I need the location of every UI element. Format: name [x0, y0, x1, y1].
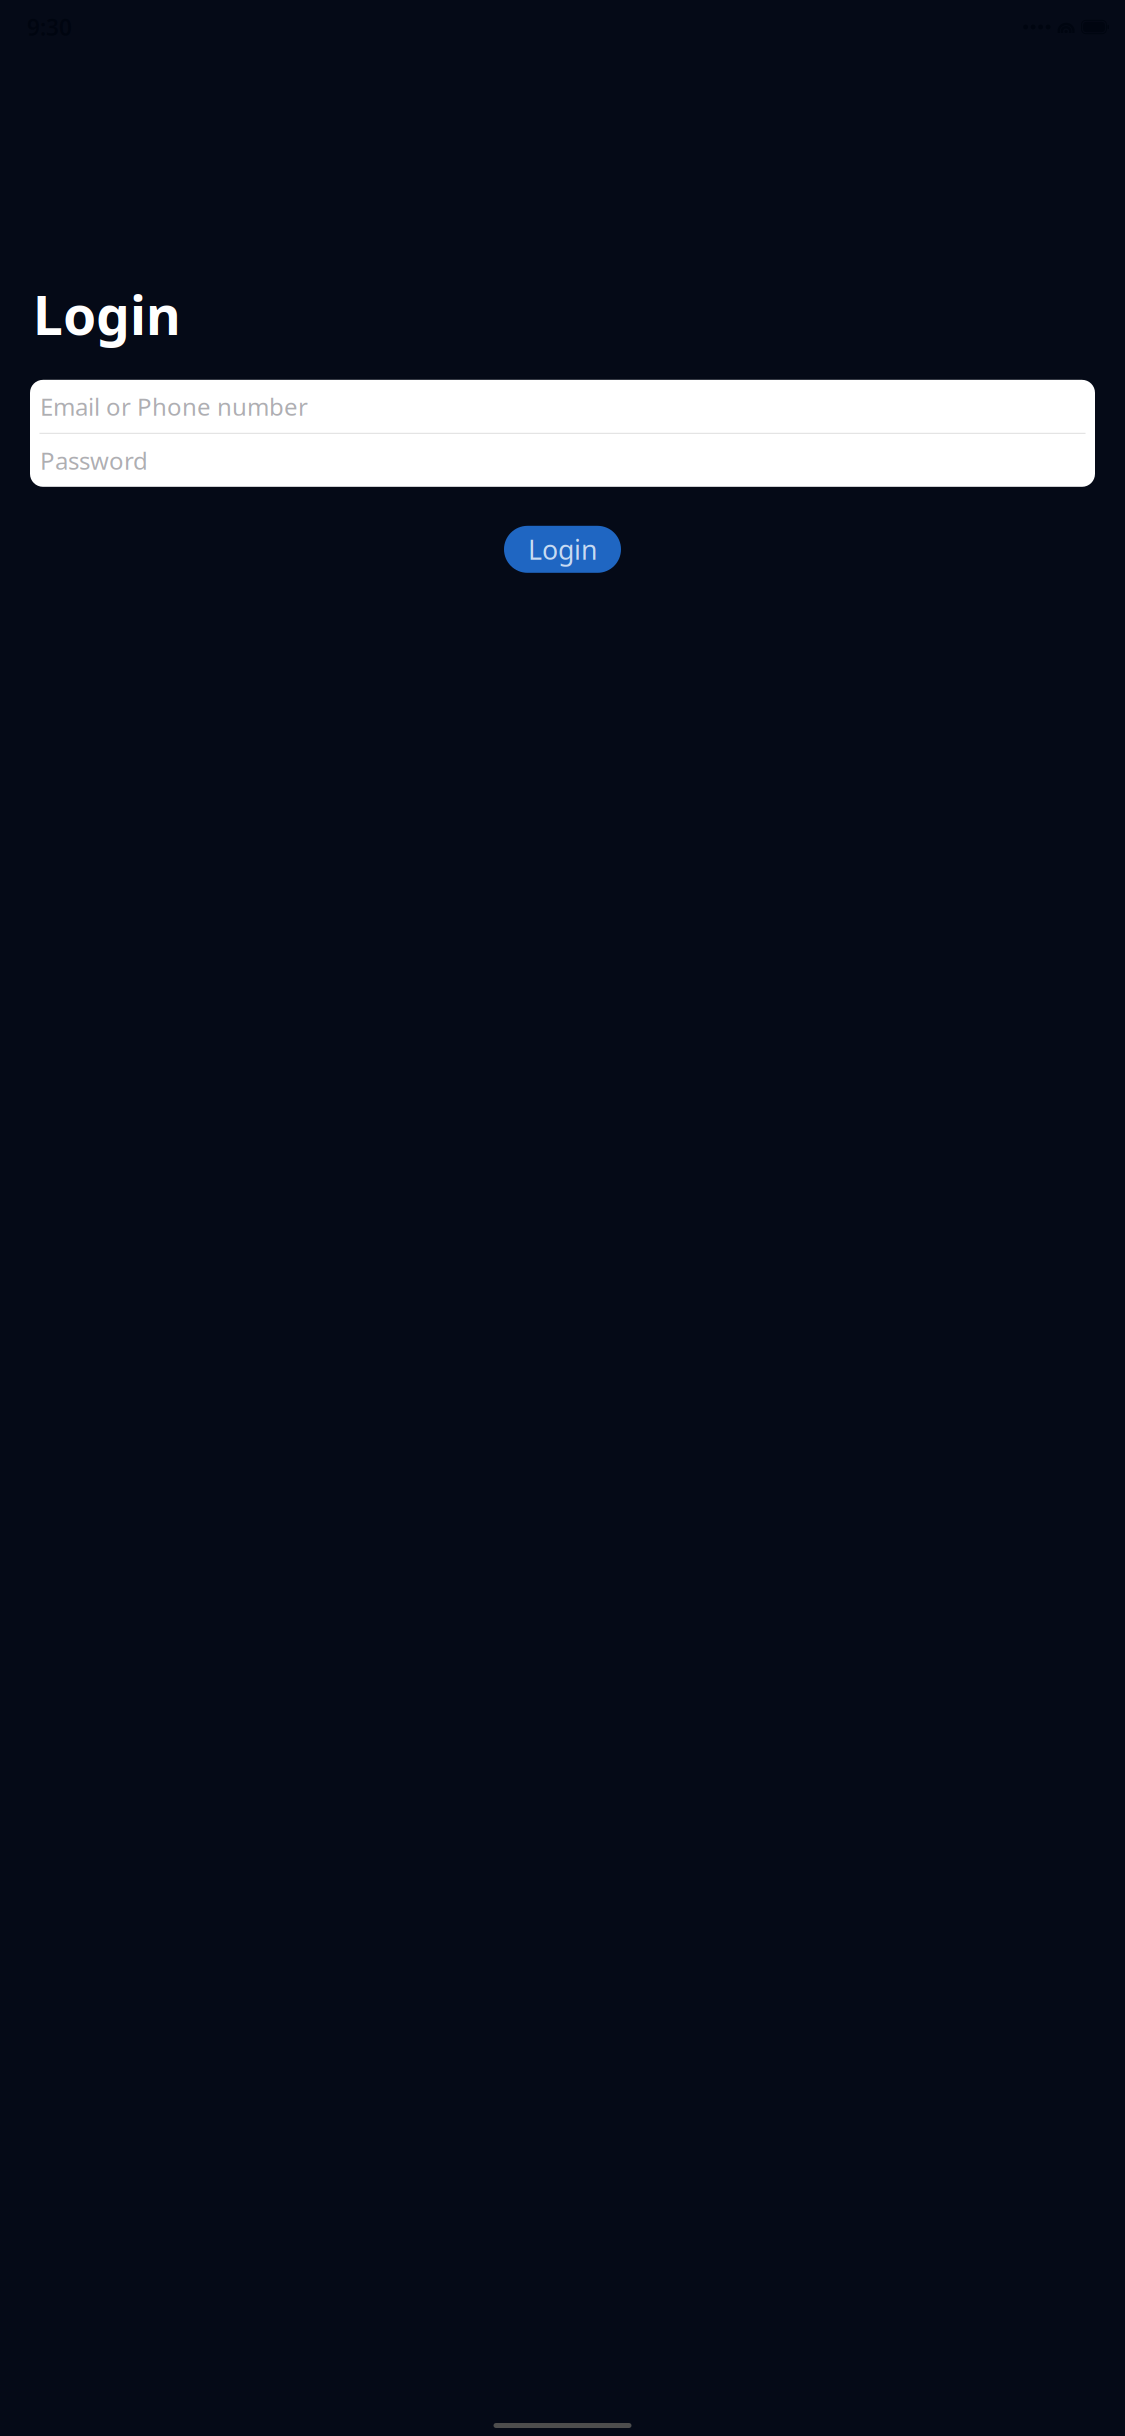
- button[interactable]: Email or Phone number: [30, 380, 1095, 433]
- staticText: Login: [33, 279, 181, 350]
- button[interactable]: Password: [30, 434, 1095, 487]
- staticText: Password: [40, 444, 148, 476]
- button[interactable]: Login: [504, 526, 621, 573]
- staticText: Login: [528, 532, 597, 567]
- staticText: Email or Phone number: [40, 390, 308, 422]
